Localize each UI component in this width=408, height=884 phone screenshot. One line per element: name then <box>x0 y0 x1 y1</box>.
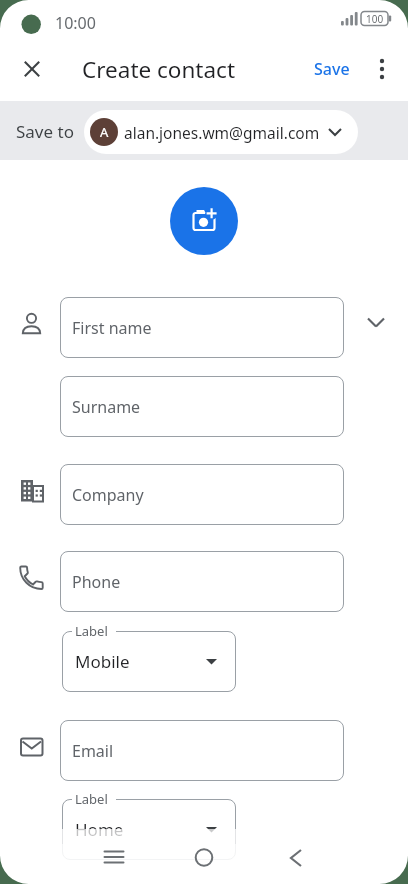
staticText: Save <box>314 58 350 80</box>
staticText: A <box>100 123 109 141</box>
button[interactable]: Mobile <box>62 631 236 692</box>
staticText: Email <box>72 740 114 762</box>
staticText: Company <box>72 484 144 506</box>
staticText: alan.jones.wm@gmail.com <box>124 122 320 143</box>
button[interactable] <box>276 837 316 877</box>
button[interactable]: Save <box>304 53 360 85</box>
staticText: Create contact <box>82 54 236 85</box>
button[interactable]: Home <box>62 799 236 860</box>
staticText: 100 <box>366 12 384 26</box>
button[interactable] <box>16 53 48 85</box>
staticText: Label <box>75 622 108 640</box>
staticText: Save to <box>16 120 74 143</box>
staticText: Label <box>75 790 108 808</box>
button[interactable]: Phone <box>60 551 344 612</box>
button[interactable]: Surname <box>60 376 344 437</box>
button[interactable]: First name <box>60 297 344 358</box>
button[interactable] <box>170 187 238 255</box>
button[interactable]: A <box>84 110 358 154</box>
staticText: Mobile <box>75 650 130 673</box>
button[interactable] <box>94 837 134 877</box>
button[interactable] <box>368 53 396 85</box>
button[interactable]: Email <box>60 720 344 781</box>
staticText: 10:00 <box>55 12 96 34</box>
staticText: First name <box>72 317 152 339</box>
staticText: Phone <box>72 571 121 593</box>
staticText: Home <box>75 818 124 841</box>
staticText: Surname <box>72 396 141 418</box>
button[interactable]: Company <box>60 464 344 525</box>
button[interactable] <box>184 837 224 877</box>
